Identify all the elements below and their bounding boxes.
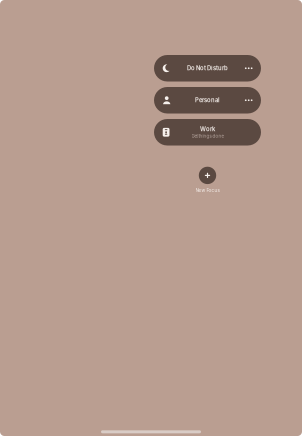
staticText: New Focus	[195, 188, 219, 193]
staticText: Work	[200, 126, 215, 133]
button[interactable]: Do Not Disturb options	[243, 62, 255, 74]
button[interactable]: New Focus	[195, 167, 219, 193]
staticText: Do Not Disturb	[187, 65, 228, 72]
button[interactable]: Work	[154, 119, 261, 145]
button[interactable]: Personal	[154, 87, 261, 113]
button[interactable]: Personal options	[243, 94, 255, 106]
button[interactable]: Do Not Disturb	[154, 55, 261, 81]
staticText: Get things done	[191, 134, 223, 139]
staticText: Personal	[195, 97, 220, 104]
